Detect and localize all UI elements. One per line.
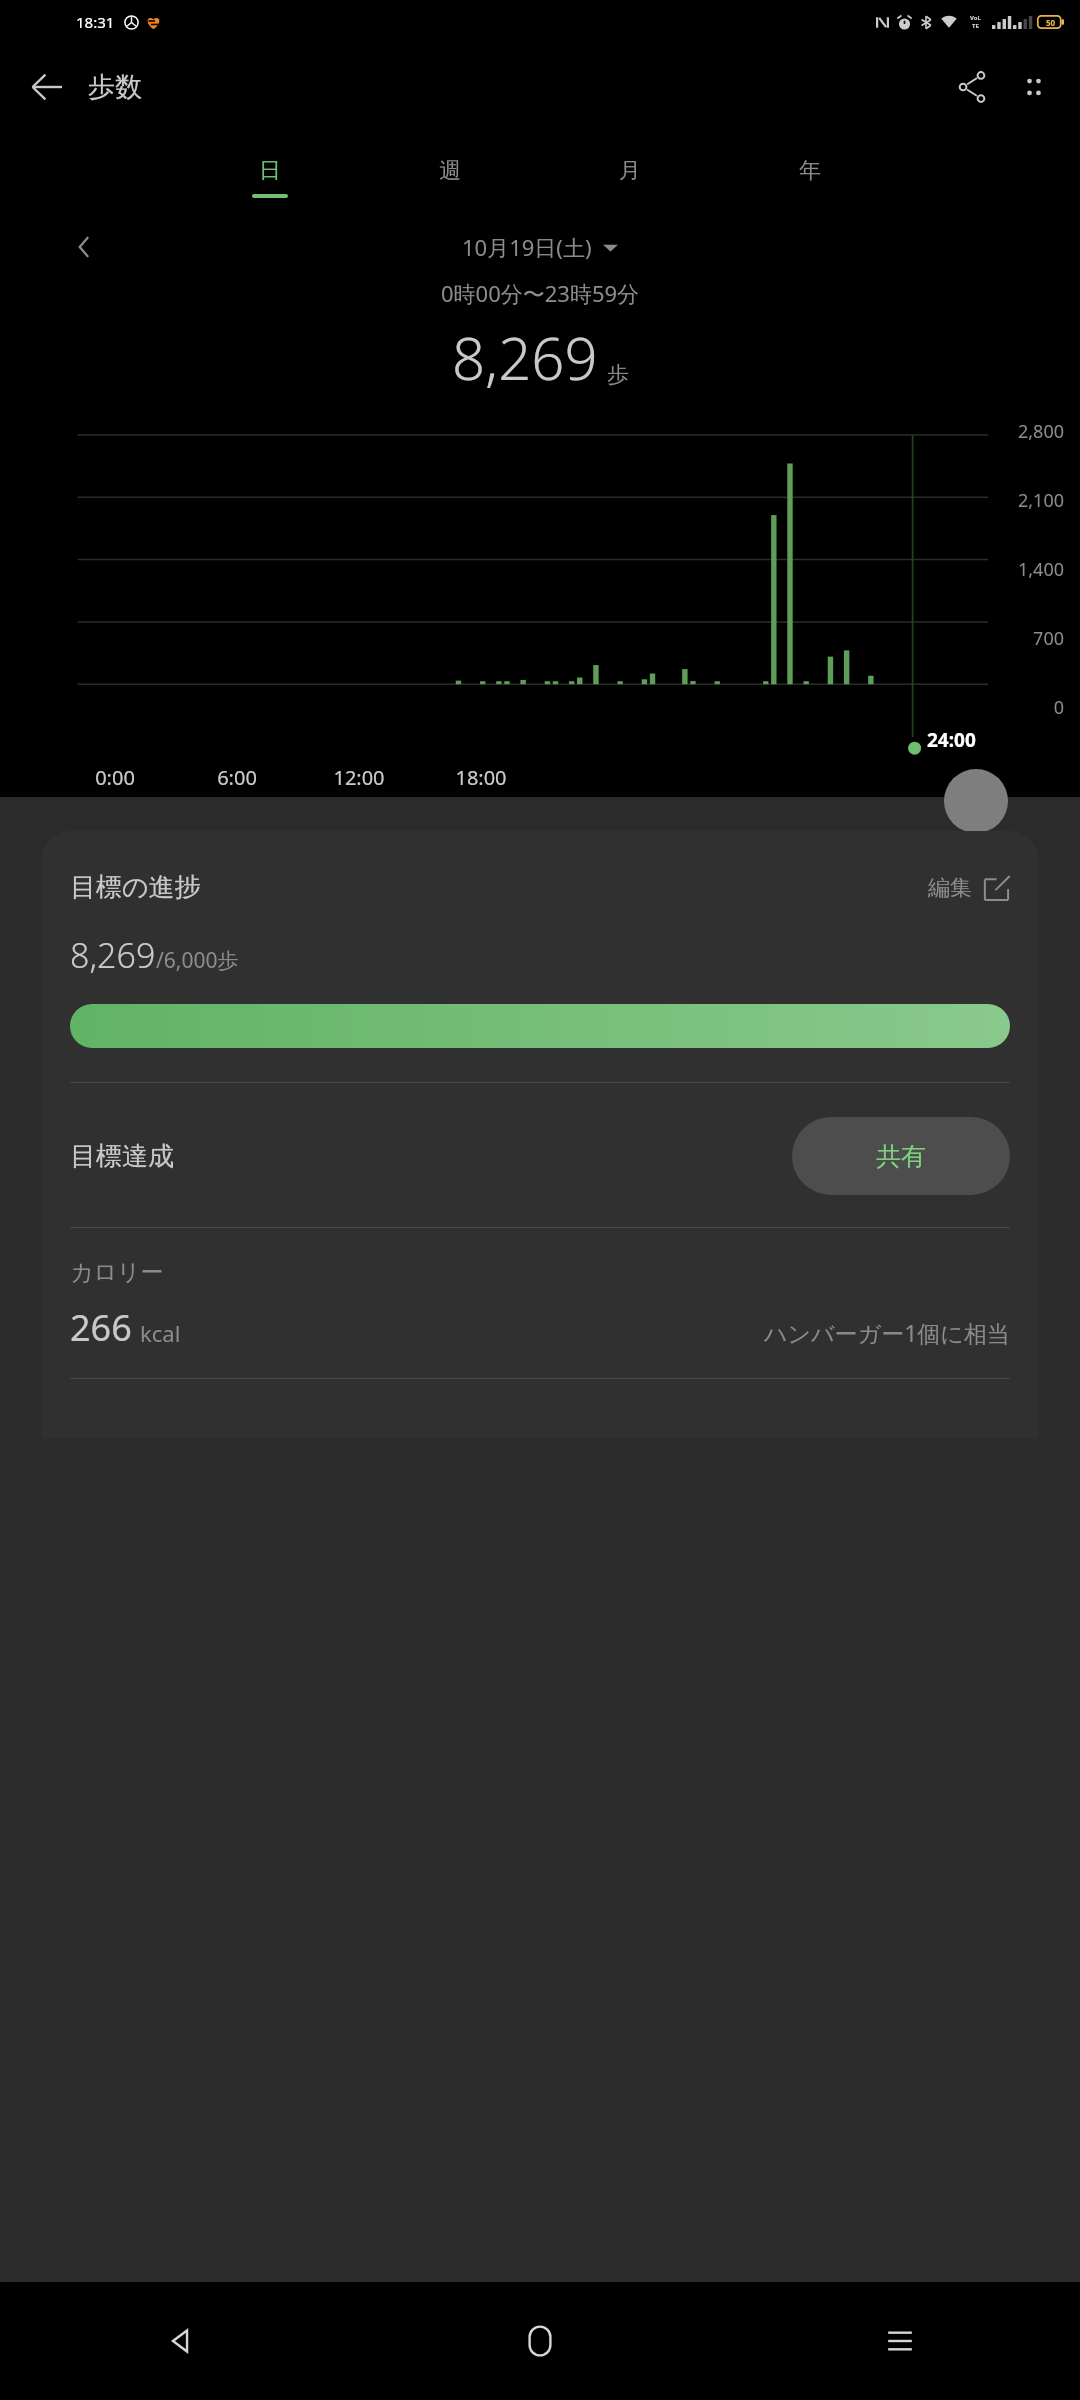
staticText: /6,000歩	[156, 946, 239, 975]
button[interactable]: Recent apps	[720, 2282, 1080, 2400]
staticText: 編集	[928, 874, 972, 902]
button[interactable]: 日	[180, 138, 360, 216]
button[interactable]: 10月19日(土)	[462, 232, 618, 262]
staticText: 700	[998, 626, 1064, 651]
staticText: 0	[998, 695, 1064, 720]
button[interactable]: 週	[360, 138, 540, 216]
button[interactable]: More options	[1006, 59, 1062, 115]
staticText: kcal	[140, 1318, 181, 1348]
button[interactable]: Expand sheet	[944, 769, 1008, 833]
button[interactable]: 年	[720, 138, 900, 216]
button[interactable]: Back	[0, 2282, 360, 2400]
staticText: 0時00分〜23時59分	[441, 278, 640, 308]
staticText: 12:00	[298, 764, 420, 791]
staticText: 0:00	[54, 764, 176, 791]
staticText: ハンバーガー1個に相当	[764, 1317, 1010, 1348]
button[interactable]: 編集	[928, 874, 1010, 902]
staticText: 2,800	[998, 419, 1064, 444]
staticText: 8,269	[452, 318, 598, 397]
staticText: カロリー	[70, 1258, 164, 1287]
staticText: VoL	[970, 14, 981, 22]
staticText: 8,269	[70, 932, 156, 978]
staticText: 6:00	[176, 764, 298, 791]
staticText: 18:31	[76, 12, 115, 32]
staticText: 1,400	[998, 557, 1064, 582]
staticText: 目標達成	[70, 1140, 174, 1173]
staticText: 歩数	[88, 70, 142, 104]
button[interactable]: 月	[540, 138, 720, 216]
button[interactable]: Back	[18, 58, 76, 116]
button[interactable]: Home	[360, 2282, 720, 2400]
staticText: 月	[619, 157, 641, 185]
staticText: 50	[1046, 17, 1056, 28]
button[interactable]: 共有	[792, 1117, 1010, 1195]
staticText: 目標の進捗	[70, 871, 201, 904]
button[interactable]: Share	[944, 59, 1000, 115]
staticText: 週	[439, 157, 461, 185]
staticText: 10月19日(土)	[462, 232, 592, 262]
staticText: 年	[799, 157, 821, 185]
staticText: 歩	[607, 361, 629, 389]
staticText: 共有	[876, 1141, 926, 1172]
staticText: TE	[972, 22, 979, 30]
button[interactable]: Previous day	[62, 224, 108, 270]
staticText: 18:00	[420, 764, 542, 791]
staticText: 24:00	[927, 727, 976, 753]
staticText: 2,100	[998, 488, 1064, 513]
staticText: 266	[70, 1303, 132, 1352]
staticText: 日	[259, 157, 281, 185]
